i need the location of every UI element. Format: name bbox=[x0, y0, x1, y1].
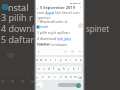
button[interactable]: h bbox=[61, 66, 66, 72]
staticText: ▬ ▬▬ ▬ bbox=[70, 1, 81, 4]
staticText: 4 downl bbox=[1, 22, 35, 34]
staticText: 5 daftar bbox=[1, 33, 35, 45]
staticText: 1.Waxlinalhurler ⊚ bbox=[37, 19, 68, 24]
button[interactable]: x bbox=[46, 74, 52, 80]
button[interactable]: s bbox=[41, 66, 46, 72]
button[interactable]: i bbox=[68, 57, 73, 63]
button[interactable]: w bbox=[39, 57, 43, 63]
button[interactable]: r bbox=[48, 57, 53, 63]
staticText: 3 pilih rujuk aplikasi bbox=[37, 30, 70, 35]
button[interactable]: ⌫ bbox=[78, 74, 83, 80]
staticText: w bbox=[40, 58, 43, 62]
staticText: s bbox=[43, 67, 45, 71]
staticText: nstal bbox=[8, 1, 29, 13]
staticText: x bbox=[48, 75, 50, 79]
button[interactable]: k bbox=[71, 66, 76, 72]
button[interactable]: t bbox=[53, 57, 58, 63]
button[interactable]: p bbox=[78, 57, 83, 63]
staticText: y bbox=[60, 58, 62, 62]
button[interactable]: Back bbox=[36, 4, 82, 10]
button[interactable]: q bbox=[35, 57, 39, 63]
button[interactable]: b bbox=[63, 74, 68, 80]
button[interactable]: ⇧ bbox=[35, 74, 40, 80]
button[interactable]: l bbox=[76, 66, 81, 72]
button[interactable]: a bbox=[37, 66, 41, 72]
staticText: 3 pilih r bbox=[1, 11, 33, 23]
staticText: ⋮ bbox=[78, 5, 82, 10]
button[interactable]: u bbox=[63, 57, 68, 63]
staticText: p bbox=[80, 58, 82, 62]
staticText: k bbox=[73, 67, 75, 71]
staticText: r bbox=[50, 58, 52, 62]
staticText: z bbox=[42, 75, 44, 79]
staticText: h bbox=[63, 67, 65, 71]
staticText: sponsor bbox=[37, 15, 51, 20]
button[interactable]: ?12 bbox=[36, 82, 40, 88]
staticText: t bbox=[55, 58, 57, 62]
staticText: ‹ bbox=[37, 5, 39, 9]
other: Back bbox=[36, 5, 40, 9]
staticText: v bbox=[60, 75, 62, 79]
button[interactable]: f bbox=[51, 66, 56, 72]
staticText: ⇧ bbox=[36, 76, 39, 79]
staticText: nstal bbox=[40, 24, 48, 29]
button[interactable]: , bbox=[40, 82, 43, 88]
staticText: m bbox=[74, 75, 77, 79]
staticText: 5 daftar rundaaan bbox=[37, 42, 67, 47]
staticText: , bbox=[41, 83, 42, 87]
button[interactable]: y bbox=[58, 57, 63, 63]
button[interactable]: o bbox=[73, 57, 78, 63]
staticText: o bbox=[75, 58, 77, 62]
staticText: d bbox=[48, 67, 50, 71]
staticText: spinet bbox=[86, 23, 110, 34]
staticText: cara dapat link limcol coin bbox=[37, 10, 80, 15]
button[interactable]: z bbox=[40, 74, 46, 80]
staticText: n bbox=[70, 75, 72, 79]
staticText: c bbox=[54, 75, 56, 79]
staticText: e bbox=[45, 58, 47, 62]
button[interactable]: j bbox=[66, 66, 71, 72]
staticText: g bbox=[58, 67, 60, 71]
staticText: l bbox=[78, 67, 79, 71]
staticText: b bbox=[65, 75, 67, 79]
button[interactable]: g bbox=[56, 66, 61, 72]
button[interactable]: m bbox=[73, 74, 78, 80]
staticText: ?12 bbox=[36, 82, 40, 88]
button[interactable]: e bbox=[43, 57, 48, 63]
staticText: 5 September 2019 bbox=[40, 5, 75, 10]
staticText: q bbox=[36, 58, 38, 62]
staticText: u bbox=[65, 58, 67, 62]
staticText: i bbox=[70, 58, 71, 62]
button[interactable]: d bbox=[46, 66, 51, 72]
button[interactable]: Enter bbox=[76, 83, 81, 88]
staticText: a bbox=[38, 67, 40, 71]
staticText: f bbox=[53, 67, 55, 71]
staticText: j bbox=[68, 67, 69, 71]
staticText: 4 download link jalur sponsor bbox=[37, 36, 85, 46]
button[interactable]: n bbox=[68, 74, 73, 80]
staticText: ⌫ bbox=[78, 76, 83, 79]
button[interactable]: Space bbox=[58, 83, 77, 87]
button[interactable]: c bbox=[52, 74, 58, 80]
button[interactable]: v bbox=[58, 74, 63, 80]
